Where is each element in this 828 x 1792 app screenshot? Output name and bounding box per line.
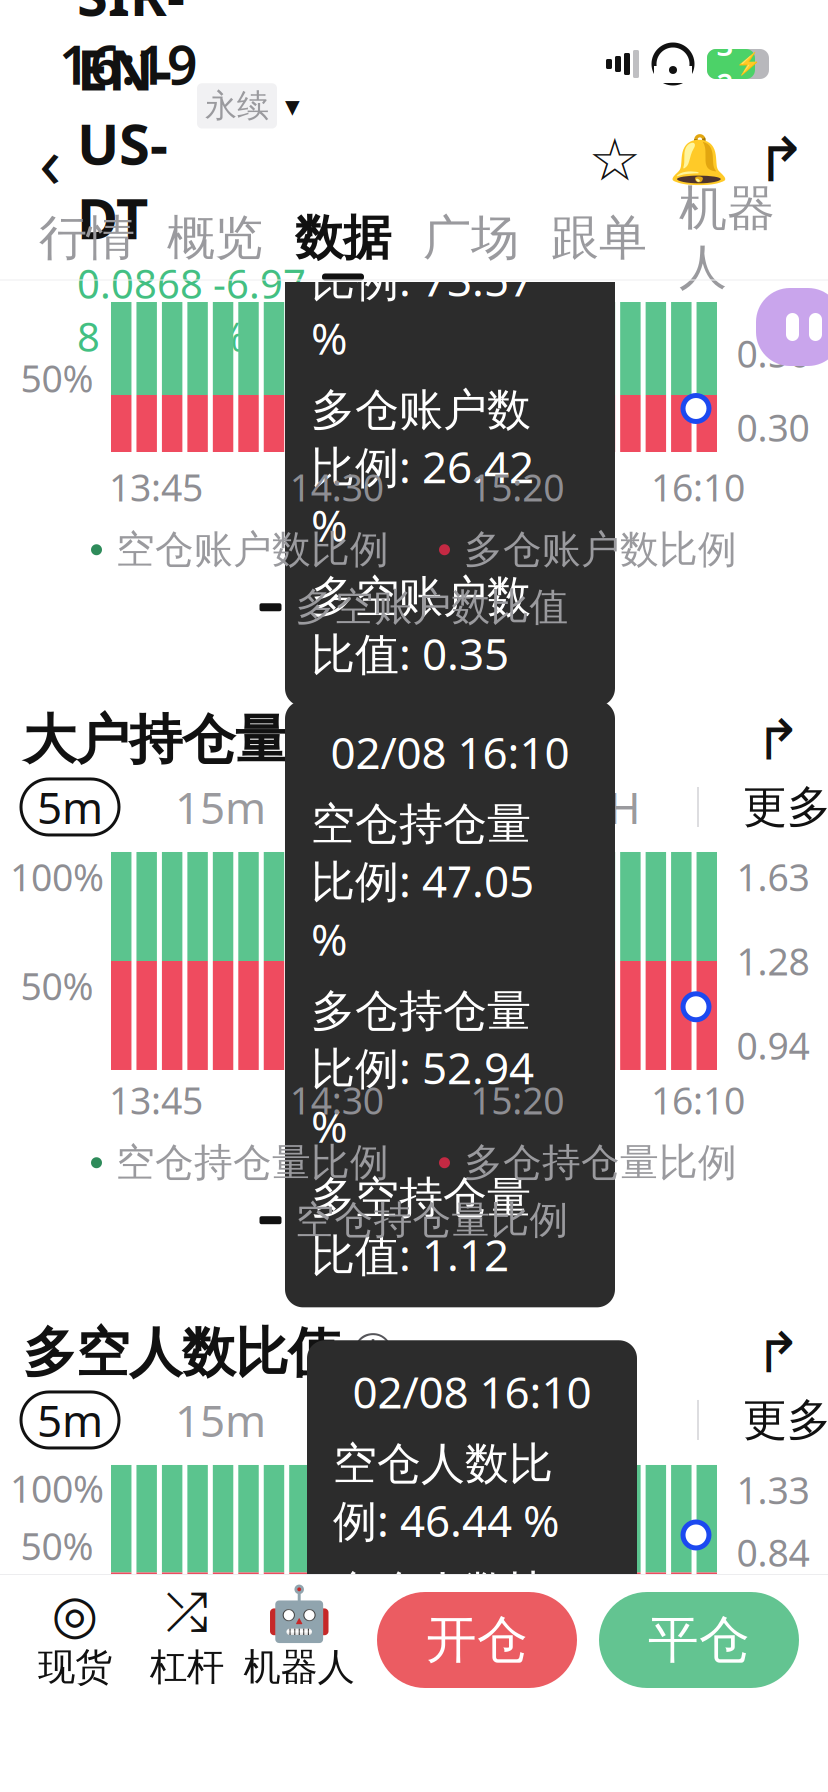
- staticText: 0.94: [736, 1020, 809, 1070]
- button[interactable]: Pause assistant: [756, 288, 828, 366]
- staticText: 杠杆: [150, 1644, 224, 1690]
- button[interactable]: 开仓: [377, 1592, 577, 1688]
- button[interactable]: ⤮: [131, 1588, 243, 1692]
- staticText: 多仓账户数比例: 26.42 %: [311, 383, 534, 554]
- staticText: 机器人: [679, 179, 775, 297]
- staticText: 14:30: [290, 1075, 384, 1125]
- staticText: 🔔: [669, 133, 729, 187]
- staticText: 行情: [39, 208, 135, 267]
- staticText: 多空账户数比值: 0.35: [311, 570, 531, 682]
- button[interactable]: 🤖: [243, 1588, 355, 1692]
- button[interactable]: 15m: [175, 1392, 266, 1448]
- staticText: 30m: [322, 1391, 413, 1449]
- staticText: 🤖: [266, 1584, 332, 1644]
- button[interactable]: Expand chart: [751, 1326, 805, 1380]
- button[interactable]: 数据: [279, 209, 407, 279]
- button[interactable]: 更多: [743, 779, 828, 835]
- button[interactable]: ◎: [19, 1588, 131, 1692]
- staticText: 0.30: [736, 402, 809, 452]
- staticText: 0.84: [736, 1527, 809, 1577]
- staticText: 100%: [10, 852, 104, 902]
- staticText: 多仓账户数比例: [464, 526, 737, 573]
- staticText: ⚡: [734, 52, 761, 76]
- staticText: 1.63: [736, 852, 809, 902]
- staticText: 14:30: [290, 462, 384, 512]
- button[interactable]: 30m: [322, 1392, 413, 1448]
- staticText: 永续: [205, 86, 269, 125]
- staticText: 开仓: [426, 1609, 528, 1671]
- staticText: SIRENUSDT: [77, 0, 185, 255]
- staticText: 多空持仓量比值: 1.12: [311, 1171, 531, 1283]
- staticText: 1H: [469, 778, 527, 836]
- button[interactable]: 跟单: [535, 209, 663, 279]
- staticText: 更多: [743, 1393, 828, 1447]
- staticText: ↱: [755, 125, 806, 195]
- button[interactable]: 30m: [322, 779, 413, 835]
- staticText: 15m: [175, 1391, 266, 1449]
- button[interactable]: 4H: [583, 1392, 641, 1448]
- staticText: 13:45: [109, 462, 203, 512]
- staticText: 1.28: [736, 936, 809, 986]
- staticText: ◎: [51, 1584, 98, 1644]
- staticText: ‹: [39, 112, 61, 208]
- staticText: 空仓持仓量比例: [116, 1139, 389, 1186]
- button[interactable]: Share: [757, 130, 805, 190]
- staticText: 空仓持仓量比例: [295, 1196, 568, 1244]
- button[interactable]: Back: [23, 118, 77, 202]
- staticText: 100%: [10, 1463, 104, 1513]
- button[interactable]: 平仓: [599, 1592, 799, 1688]
- staticText: 1H: [469, 1391, 527, 1449]
- staticText: 15m: [175, 778, 266, 836]
- staticText: 多空人数比值: [23, 1320, 341, 1386]
- button[interactable]: Expand chart: [751, 713, 805, 767]
- staticText: -6.97%: [213, 257, 306, 363]
- staticText: ▾: [285, 89, 300, 122]
- button[interactable]: 概览: [151, 209, 279, 279]
- staticText: 5m: [37, 778, 103, 836]
- button[interactable]: 广场: [407, 209, 535, 279]
- button[interactable]: 更多: [743, 1392, 828, 1448]
- button[interactable]: 5m: [21, 1392, 119, 1448]
- staticText: 平仓: [648, 1609, 750, 1671]
- staticText: 15:20: [470, 1075, 564, 1125]
- staticText: 数据: [295, 208, 391, 267]
- button[interactable]: 4H: [583, 779, 641, 835]
- staticText: 0.56: [736, 328, 809, 378]
- staticText: ⓘ: [447, 715, 499, 764]
- staticText: 13:45: [109, 1075, 203, 1125]
- staticText: 4H: [583, 1391, 641, 1449]
- staticText: 0.08688: [77, 257, 203, 363]
- button[interactable]: 5m: [21, 779, 119, 835]
- button[interactable]: Alerts: [675, 130, 723, 190]
- button[interactable]: 1H: [469, 779, 527, 835]
- staticText: 4H: [583, 778, 641, 836]
- staticText: ↱: [754, 708, 801, 772]
- staticText: 1.33: [736, 1465, 809, 1515]
- staticText: 概览: [167, 208, 263, 267]
- staticText: 50%: [20, 1521, 93, 1571]
- staticText: 15:20: [470, 462, 564, 512]
- staticText: 50%: [20, 961, 93, 1011]
- staticText: 多仓人数比例: 53.55 %: [333, 1565, 560, 1678]
- staticText: 02/08 16:10: [330, 723, 569, 781]
- staticText: 更多: [743, 780, 828, 834]
- staticText: 空仓人数比例: 46.44 %: [333, 1437, 560, 1549]
- staticText: 02/08 16:10: [352, 1362, 591, 1421]
- button[interactable]: 永续: [197, 83, 300, 128]
- button[interactable]: 行情: [23, 209, 151, 279]
- staticText: 多仓持仓量比例: 52.94 %: [311, 984, 534, 1155]
- staticText: 大户持仓量多空比: [23, 707, 447, 773]
- staticText: 30m: [322, 778, 413, 836]
- button[interactable]: 1H: [469, 1392, 527, 1448]
- button[interactable]: 机器人: [663, 209, 791, 279]
- staticText: 16:19: [59, 29, 198, 99]
- staticText: 跟单: [551, 208, 647, 267]
- staticText: 空仓账户数比例: [116, 526, 389, 573]
- staticText: ⓘ: [341, 1328, 393, 1377]
- staticText: 现货: [38, 1644, 112, 1690]
- button[interactable]: 15m: [175, 779, 266, 835]
- button[interactable]: Favorite: [589, 130, 641, 190]
- staticText: 空仓账户数比例: 73.57 %: [311, 196, 534, 367]
- staticText: 16:10: [651, 462, 745, 512]
